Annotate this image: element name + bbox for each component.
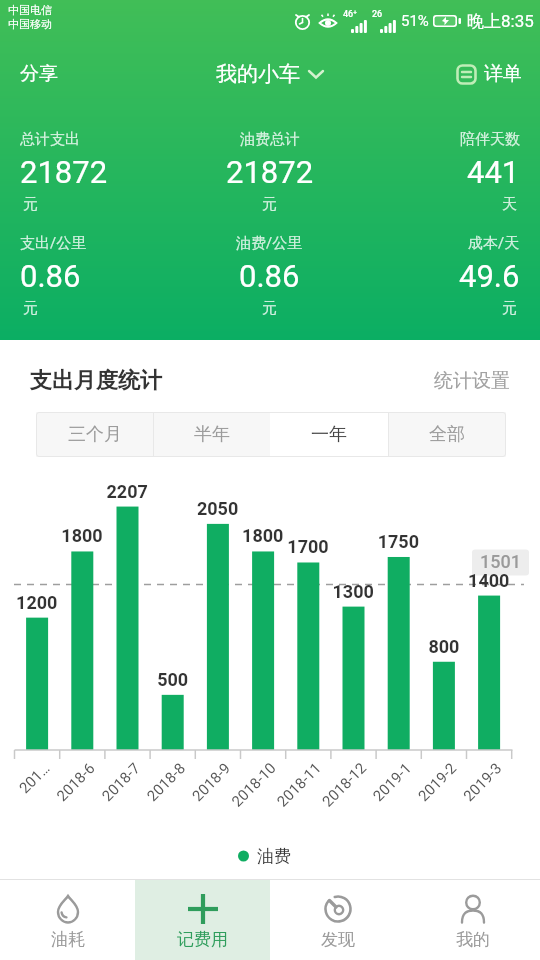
staticText: 三个月	[68, 423, 122, 446]
staticText: 详单	[484, 62, 522, 86]
staticText: 油费/公里	[236, 234, 303, 253]
staticText: 总计支出	[20, 130, 80, 149]
staticText: 0.86	[20, 258, 81, 294]
staticText: 统计设置	[434, 369, 510, 393]
button[interactable]: 统计设置	[434, 369, 510, 393]
staticText: 441	[467, 154, 520, 190]
staticText: 21872	[226, 154, 314, 190]
staticText: 46⁺	[343, 9, 357, 20]
button[interactable]: 分享	[20, 62, 58, 86]
button[interactable]: 我的	[405, 880, 540, 960]
button[interactable]: 半年	[153, 412, 270, 457]
staticText: 元	[23, 195, 38, 214]
staticText: 天	[502, 195, 517, 214]
button[interactable]: 发现	[270, 880, 405, 960]
staticText: 半年	[194, 423, 230, 446]
staticText: 0.86	[239, 258, 300, 294]
staticText: 我的小车	[216, 61, 300, 87]
staticText: 一年	[311, 423, 347, 446]
staticText: 元	[262, 299, 277, 318]
staticText: 晚上8:35	[467, 11, 534, 32]
button[interactable]: 油耗	[0, 880, 135, 960]
staticText: 分享	[20, 62, 58, 86]
staticText: 记费用	[177, 929, 228, 950]
staticText: 元	[23, 299, 38, 318]
staticText: 26	[372, 9, 383, 20]
button[interactable]: 详单	[456, 62, 522, 86]
staticText: 油费总计	[240, 130, 300, 149]
button[interactable]: 全部	[388, 412, 506, 457]
staticText: 21872	[20, 154, 108, 190]
staticText: 全部	[429, 423, 465, 446]
staticText: 成本/天	[468, 234, 520, 253]
staticText: 中国电信	[8, 3, 52, 17]
button[interactable]: 我的小车	[216, 61, 324, 87]
staticText: 49.6	[459, 258, 520, 294]
staticText: 支出月度统计	[30, 367, 162, 395]
staticText: 陪伴天数	[460, 130, 520, 149]
staticText: 51%	[401, 12, 429, 30]
staticText: 元	[262, 195, 277, 214]
button[interactable]: 三个月	[36, 412, 153, 457]
button[interactable]: 一年	[270, 412, 388, 457]
staticText: 元	[502, 299, 517, 318]
staticText: 支出/公里	[20, 234, 87, 253]
staticText: 油耗	[51, 929, 85, 950]
button[interactable]: 记费用	[135, 880, 270, 960]
staticText: 中国移动	[8, 17, 52, 31]
staticText: 我的	[456, 929, 490, 950]
staticText: 发现	[321, 929, 355, 950]
